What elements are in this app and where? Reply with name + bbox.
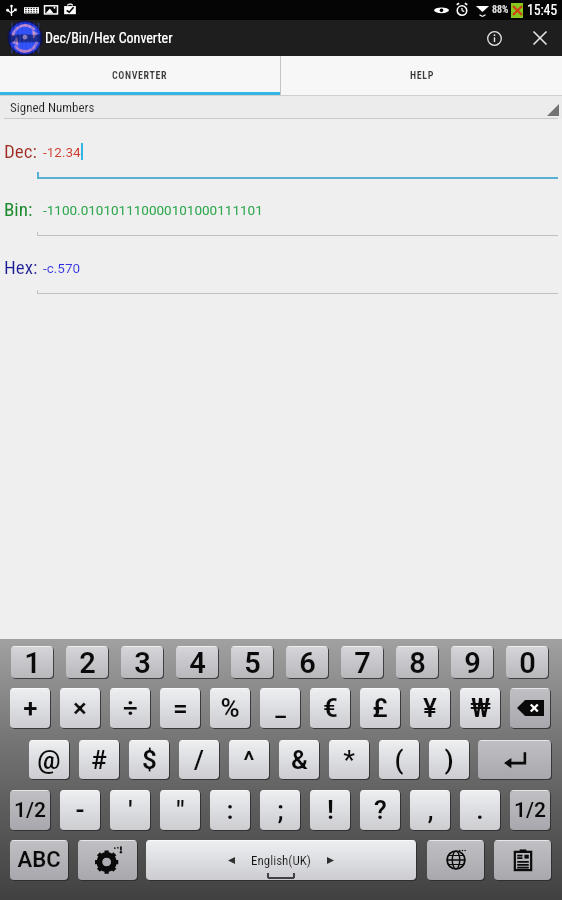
staticText: 0 bbox=[519, 646, 536, 678]
staticText: & bbox=[291, 745, 308, 775]
button[interactable]: 1 bbox=[11, 646, 53, 678]
button[interactable]: 2 bbox=[66, 646, 108, 678]
staticText: Dec: bbox=[4, 140, 37, 162]
staticText: ¥ bbox=[423, 693, 437, 723]
button[interactable]: $ bbox=[129, 740, 169, 779]
button[interactable]: 8 bbox=[396, 646, 438, 678]
button[interactable]: % bbox=[210, 688, 250, 728]
button[interactable]: 1/2 bbox=[510, 790, 550, 830]
button[interactable]: £ bbox=[360, 688, 400, 728]
button[interactable]: _ bbox=[260, 688, 300, 728]
button[interactable]: 0 bbox=[506, 646, 548, 678]
button[interactable]: Enter bbox=[478, 740, 551, 779]
staticText: ) bbox=[444, 745, 454, 775]
button[interactable]: / bbox=[179, 740, 219, 779]
button[interactable]: # bbox=[79, 740, 119, 779]
button[interactable]: . bbox=[460, 790, 500, 830]
staticText: # bbox=[91, 745, 107, 775]
staticText: 7 bbox=[354, 646, 371, 678]
staticText: " bbox=[176, 795, 185, 825]
button[interactable]: ₩ bbox=[460, 688, 500, 728]
staticText: ; bbox=[277, 795, 284, 825]
staticText: -c.570 bbox=[43, 260, 81, 276]
staticText: 4 bbox=[189, 646, 206, 678]
button[interactable]: ÷ bbox=[110, 688, 150, 728]
button[interactable]: Settings bbox=[78, 840, 137, 880]
button[interactable]: , bbox=[410, 790, 450, 830]
staticText: ? bbox=[374, 795, 387, 825]
button[interactable]: : bbox=[210, 790, 250, 830]
button[interactable]: ( bbox=[379, 740, 419, 779]
button[interactable]: 3 bbox=[121, 646, 163, 678]
button[interactable]: * bbox=[329, 740, 369, 779]
staticText: 1 bbox=[24, 646, 41, 678]
button[interactable]: @ bbox=[29, 740, 69, 779]
staticText: € bbox=[323, 693, 338, 723]
staticText: 5 bbox=[244, 646, 261, 678]
staticText: ! bbox=[327, 795, 334, 825]
button[interactable]: 4 bbox=[176, 646, 218, 678]
button[interactable]: CONVERTER bbox=[0, 56, 280, 96]
staticText: -1100.010101110000101000111101 bbox=[43, 202, 263, 218]
button[interactable]: 6 bbox=[286, 646, 328, 678]
staticText: = bbox=[173, 693, 188, 723]
staticText: , bbox=[427, 795, 434, 825]
button[interactable]: Close bbox=[518, 20, 562, 56]
button[interactable]: - bbox=[60, 790, 100, 830]
button[interactable]: = bbox=[160, 688, 200, 728]
button[interactable]: Hex: bbox=[4, 256, 558, 292]
staticText: ABC bbox=[17, 847, 61, 873]
button[interactable]: 9 bbox=[451, 646, 493, 678]
button[interactable]: HELP bbox=[281, 56, 562, 96]
button[interactable]: 5 bbox=[231, 646, 273, 678]
staticText: ₩ bbox=[470, 693, 491, 723]
staticText: Bin: bbox=[4, 198, 33, 220]
button[interactable]: Space English(UK) bbox=[146, 840, 416, 880]
button[interactable]: ' bbox=[110, 790, 150, 830]
staticText: CONVERTER bbox=[112, 70, 168, 82]
button[interactable]: Change language bbox=[427, 840, 484, 880]
staticText: - bbox=[75, 795, 85, 825]
button[interactable]: × bbox=[60, 688, 100, 728]
staticText: HELP bbox=[410, 70, 434, 82]
staticText: @ bbox=[37, 745, 61, 775]
button[interactable]: € bbox=[310, 688, 350, 728]
staticText: Dec/Bin/Hex Converter bbox=[45, 30, 173, 46]
staticText: ^ bbox=[243, 745, 255, 775]
staticText: ( bbox=[394, 745, 404, 775]
staticText: Hex: bbox=[4, 256, 38, 278]
button[interactable]: ! bbox=[310, 790, 350, 830]
button[interactable]: Clipboard bbox=[494, 840, 551, 880]
staticText: -12.34 bbox=[43, 144, 81, 160]
button[interactable]: ? bbox=[360, 790, 400, 830]
staticText: Signed Numbers bbox=[10, 100, 95, 115]
button[interactable]: 7 bbox=[341, 646, 383, 678]
staticText: ÷ bbox=[123, 693, 138, 723]
button[interactable]: Info bbox=[471, 20, 518, 56]
button[interactable]: ABC bbox=[10, 840, 68, 880]
staticText: 8 bbox=[409, 646, 426, 678]
staticText: . bbox=[476, 795, 484, 825]
button[interactable]: & bbox=[279, 740, 319, 779]
button[interactable]: Bin: bbox=[4, 198, 558, 234]
staticText: _ bbox=[275, 694, 286, 722]
button[interactable]: ^ bbox=[229, 740, 269, 779]
button[interactable]: 1/2 bbox=[10, 790, 50, 830]
staticText: + bbox=[23, 693, 38, 723]
button[interactable]: + bbox=[10, 688, 50, 728]
button[interactable]: ) bbox=[429, 740, 469, 779]
staticText: 1/2 bbox=[14, 798, 46, 823]
staticText: English(UK) bbox=[251, 853, 311, 868]
staticText: : bbox=[226, 795, 234, 825]
button[interactable]: Dec: bbox=[4, 140, 558, 176]
button[interactable]: " bbox=[160, 790, 200, 830]
button[interactable]: Signed Numbers bbox=[0, 96, 562, 119]
button[interactable]: ; bbox=[260, 790, 300, 830]
button[interactable]: ¥ bbox=[410, 688, 450, 728]
button[interactable]: Backspace bbox=[510, 688, 550, 728]
staticText: 6 bbox=[299, 646, 316, 678]
staticText: 9 bbox=[464, 646, 481, 678]
staticText: 1/2 bbox=[514, 798, 546, 823]
staticText: * bbox=[343, 745, 355, 775]
staticText: 2 bbox=[79, 646, 96, 678]
